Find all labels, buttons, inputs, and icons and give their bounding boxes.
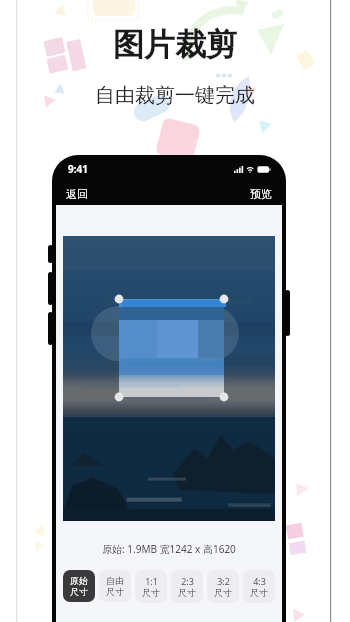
staticText: 3:2 xyxy=(217,575,230,587)
staticText: 尺寸 xyxy=(214,587,232,598)
staticText: 2:3 xyxy=(181,575,194,587)
staticText: 4:3 xyxy=(253,575,266,587)
staticText: 尺寸 xyxy=(106,586,124,597)
button[interactable]: 1:1 xyxy=(135,570,167,603)
staticText: 原始: 1.9MB 宽1242 x 高1620 xyxy=(102,542,236,556)
button[interactable]: 自由 xyxy=(99,570,131,602)
staticText: 尺寸 xyxy=(70,586,88,597)
staticText: 尺寸 xyxy=(178,587,196,598)
staticText: 自由裁剪一键完成 xyxy=(95,83,255,108)
staticText: 自由 xyxy=(106,575,124,586)
staticText: 尺寸 xyxy=(142,587,160,598)
staticText: 图片裁剪 xyxy=(113,25,237,64)
button[interactable]: 原始 xyxy=(63,570,95,602)
button[interactable]: 返回 xyxy=(66,187,88,201)
staticText: 尺寸 xyxy=(250,587,268,598)
staticText: 9:41 xyxy=(68,162,88,176)
button[interactable]: 3:2 xyxy=(207,570,239,603)
button[interactable]: 预览 xyxy=(250,187,272,201)
staticText: 原始 xyxy=(70,575,88,586)
button[interactable]: 2:3 xyxy=(171,570,203,603)
staticText: 1:1 xyxy=(145,575,158,587)
button[interactable]: 4:3 xyxy=(243,570,275,603)
